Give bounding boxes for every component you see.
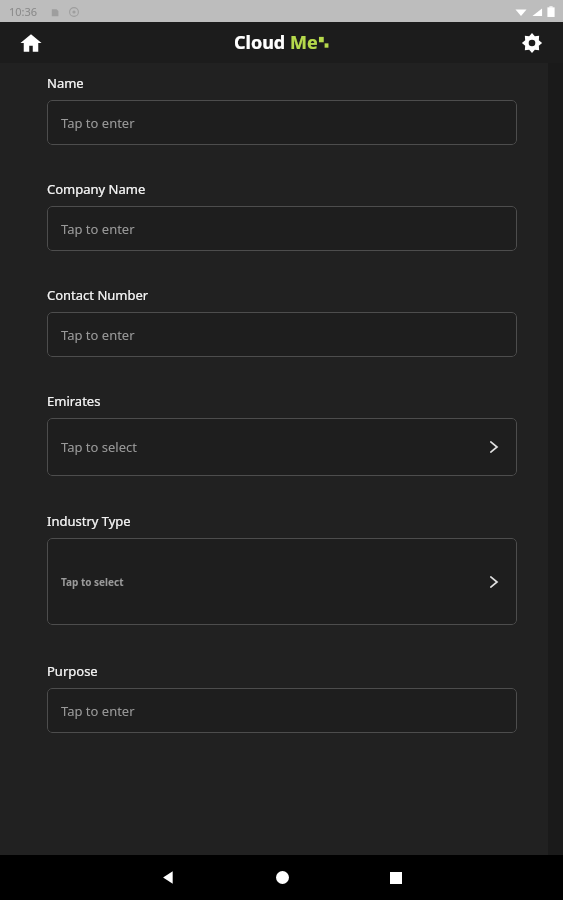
button[interactable]: Settings [511,22,553,63]
staticText: Emirates [47,392,101,410]
staticText: 10:36 [9,4,38,19]
button[interactable]: Home [254,855,310,900]
button[interactable]: Recent apps [368,855,424,900]
staticText: Purpose [47,662,98,680]
button[interactable]: Tap to select [47,418,517,476]
button[interactable]: Tap to enter [47,100,517,145]
staticText: Company Name [47,180,146,198]
button[interactable]: Tap to enter [47,312,517,357]
staticText: Industry Type [47,512,131,530]
staticText: Tap to enter [61,114,135,132]
button[interactable]: Tap to select [47,538,517,625]
button[interactable]: Home [10,22,52,63]
button[interactable]: Tap to enter [47,206,517,251]
staticText: Name [47,74,84,92]
button[interactable]: Tap to enter [47,688,517,733]
staticText: Contact Number [47,286,149,304]
staticText: Tap to enter [61,702,135,720]
staticText: Cloud Me [234,30,318,55]
staticText: Tap to enter [61,220,135,238]
staticText: Tap to select [61,438,137,456]
staticText: Tap to select [61,575,124,589]
button[interactable]: Back [140,855,196,900]
staticText: Tap to enter [61,326,135,344]
